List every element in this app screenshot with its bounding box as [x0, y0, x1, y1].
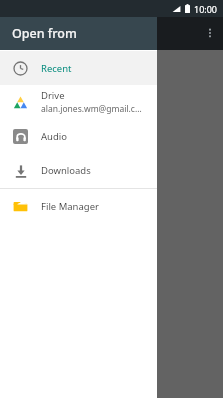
staticText: 10:00 — [194, 3, 218, 15]
staticText: Open from — [12, 25, 77, 42]
button[interactable]: More options — [196, 19, 223, 46]
staticText: Drive — [41, 89, 65, 102]
button[interactable]: Downloads — [0, 153, 157, 187]
button[interactable]: Drive — [0, 85, 157, 119]
staticText: Audio — [41, 130, 67, 143]
button[interactable]: Recent — [0, 51, 157, 85]
staticText: File Manager — [41, 200, 99, 213]
button[interactable]: Audio — [0, 119, 157, 153]
staticText: Recent — [41, 62, 72, 75]
staticText: Downloads — [41, 164, 91, 177]
button[interactable]: File Manager — [0, 189, 157, 223]
staticText: alan.jones.wm@gmail.c… — [41, 103, 142, 115]
